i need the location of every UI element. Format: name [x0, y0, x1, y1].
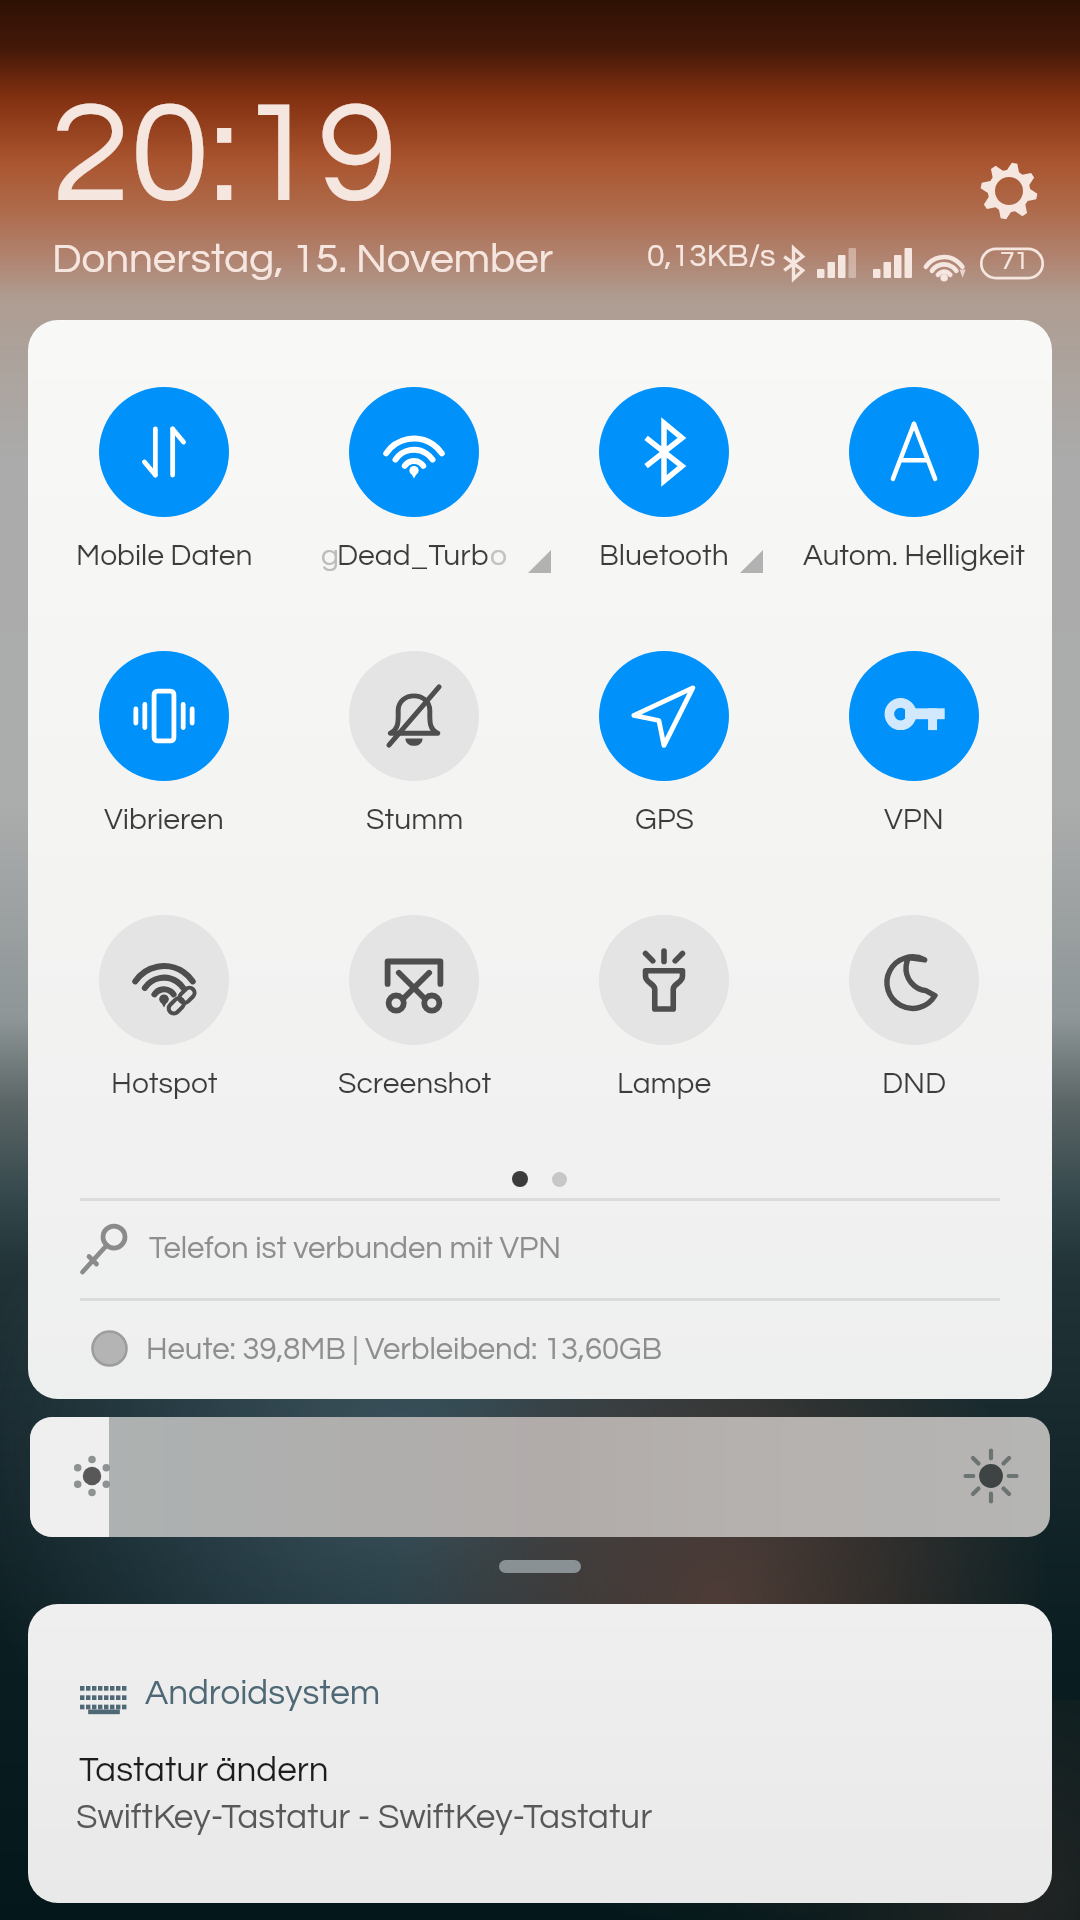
button[interactable]: [539, 387, 789, 587]
staticText: GPS: [635, 804, 694, 835]
button[interactable]: Collapse: [499, 1560, 581, 1573]
staticText: Donnerstag, 15. November: [52, 238, 553, 281]
staticText: VPN: [884, 804, 944, 835]
staticText: Vibrieren: [104, 804, 224, 835]
button[interactable]: [789, 651, 1039, 851]
button[interactable]: [39, 915, 289, 1115]
staticText: Heute: 39,8MB | Verbleibend: 13,60GB: [146, 1334, 662, 1366]
staticText: Lampe: [617, 1068, 712, 1099]
staticText: Dead_Turb: [337, 540, 489, 571]
button[interactable]: Brightness: [30, 1417, 1050, 1537]
button[interactable]: Settings: [959, 141, 1059, 241]
staticText: Telefon ist verbunden mit VPN: [149, 1233, 562, 1265]
staticText: Mobile Daten: [76, 540, 253, 571]
button[interactable]: [39, 651, 289, 851]
button[interactable]: [289, 651, 539, 851]
staticText: SwiftKey-Tastatur - SwiftKey-Tastatur: [76, 1799, 653, 1835]
button[interactable]: [289, 387, 539, 587]
staticText: Tastatur ändern: [79, 1752, 329, 1788]
button[interactable]: [539, 651, 789, 851]
staticText: 0,13KB/s: [647, 240, 776, 273]
staticText: Stumm: [366, 804, 464, 835]
button[interactable]: [39, 387, 289, 587]
staticText: g: [321, 540, 339, 571]
staticText: Androidsystem: [145, 1675, 381, 1711]
button[interactable]: [56, 1301, 1024, 1398]
staticText: Autom. Helligkeit: [803, 540, 1026, 571]
staticText: 20:19: [51, 82, 398, 230]
button[interactable]: [56, 1201, 1024, 1298]
button[interactable]: [539, 915, 789, 1115]
staticText: o: [490, 540, 507, 571]
staticText: DND: [882, 1068, 947, 1099]
button[interactable]: [289, 915, 539, 1115]
staticText: Bluetooth: [599, 540, 729, 571]
button[interactable]: Androidsystem: [28, 1604, 1052, 1903]
staticText: Hotspot: [111, 1068, 218, 1099]
staticText: 71: [1000, 248, 1029, 275]
staticText: Screenshot: [338, 1068, 492, 1099]
button[interactable]: [789, 387, 1039, 587]
button[interactable]: [789, 915, 1039, 1115]
